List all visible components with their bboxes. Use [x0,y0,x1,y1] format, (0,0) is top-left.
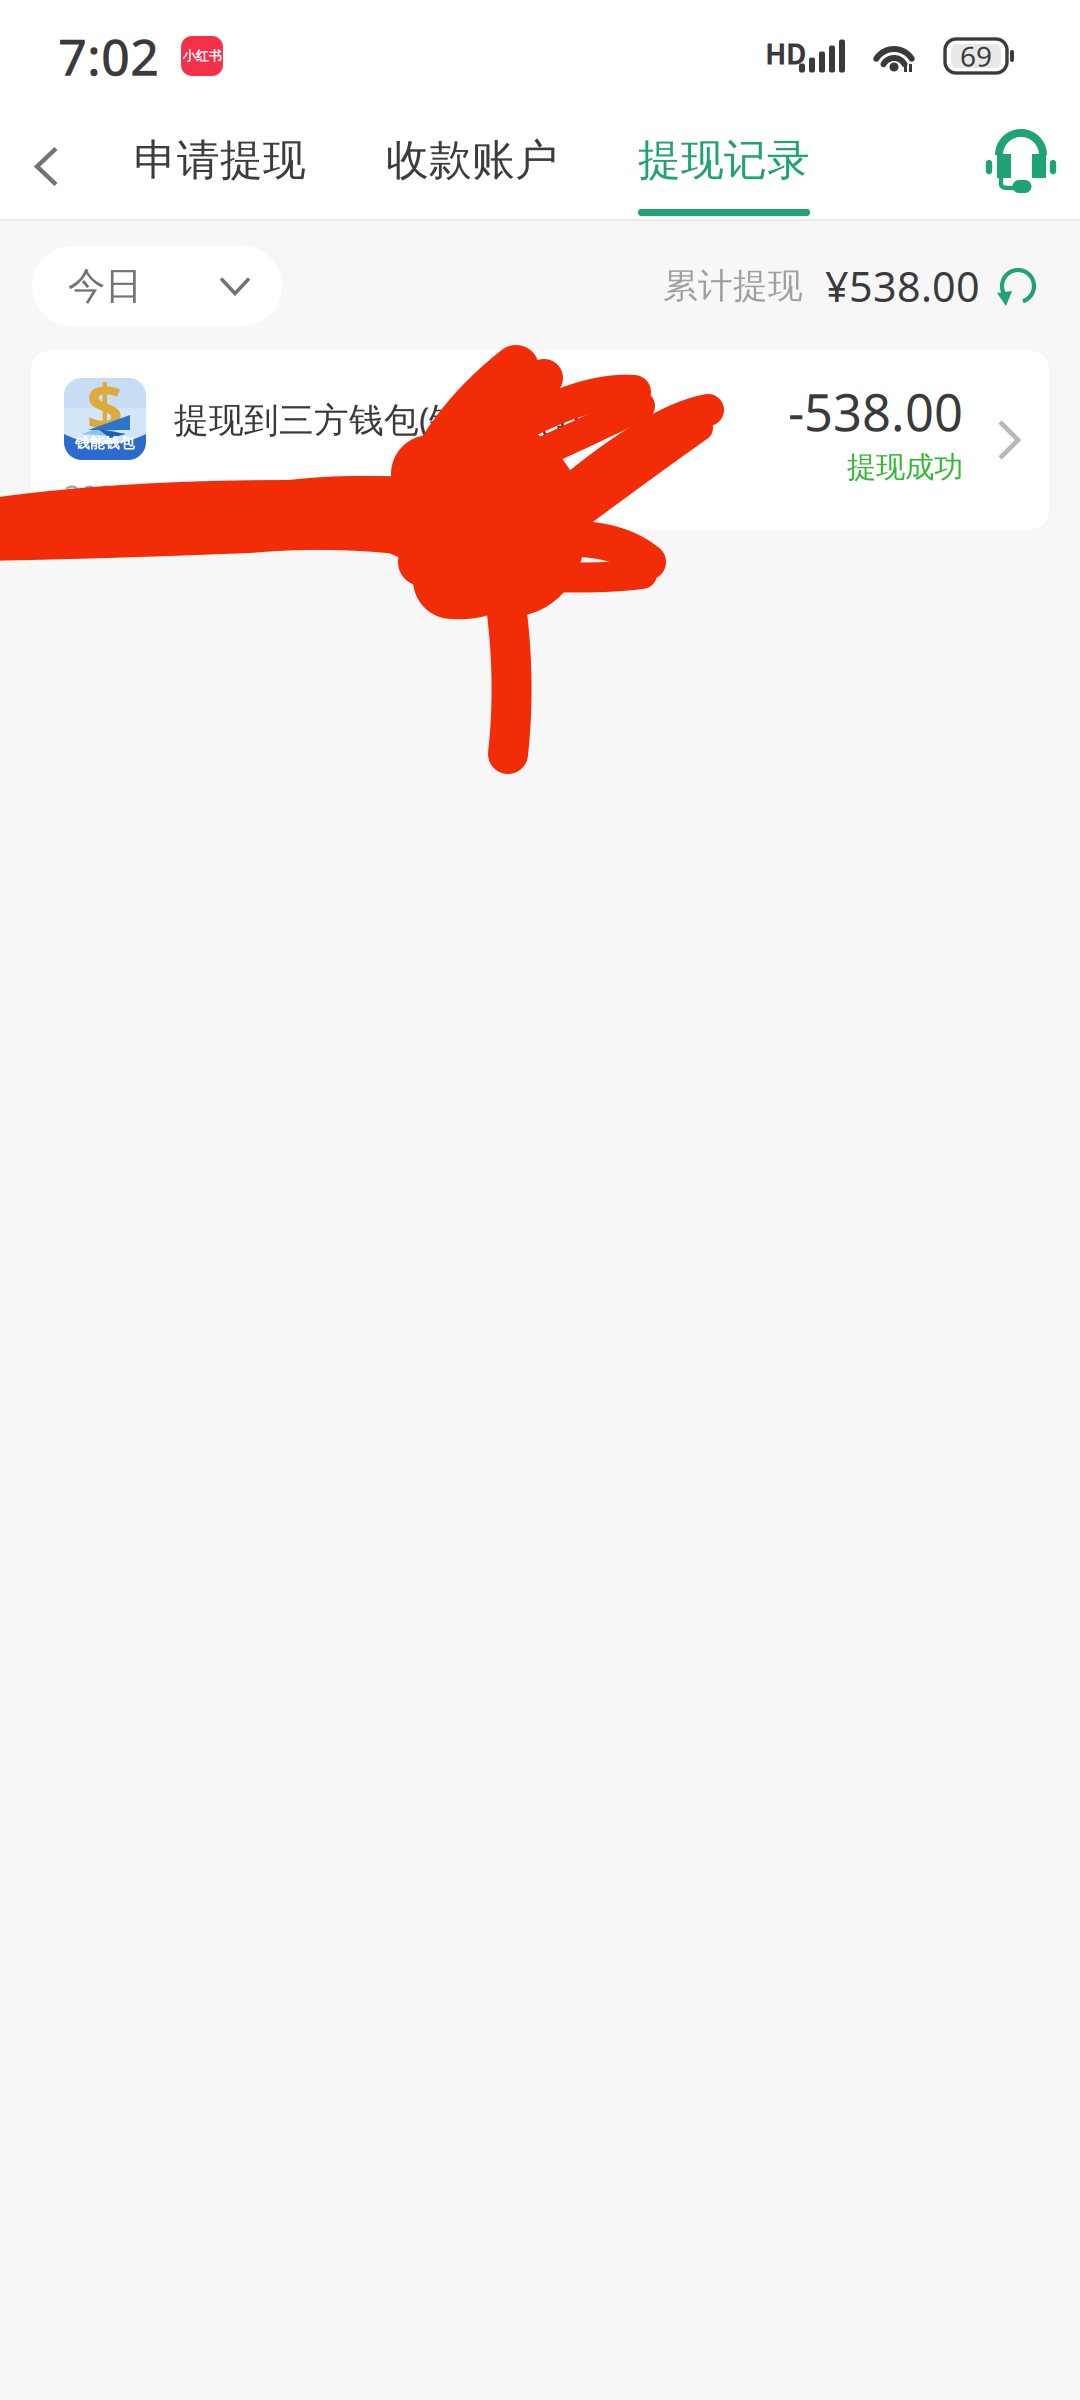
button[interactable]: 提现记录 [638,112,810,221]
staticText: 7:02 [58,22,159,90]
button[interactable]: Back [0,112,92,221]
button[interactable]: $ [31,351,1049,529]
staticText: 提现成功 [847,449,963,485]
staticText: $ [86,363,123,448]
button[interactable]: Customer service [962,112,1080,221]
staticText: 2025/09/08 19:22:10 [64,475,348,514]
button[interactable]: 收款账户 [386,112,558,221]
staticText: 提现记录 [638,134,810,186]
button[interactable]: 申请提现 [134,112,306,221]
button[interactable]: Refresh [994,262,1042,310]
staticText: 累计提现 [663,265,803,307]
button[interactable]: 今日 [32,246,282,326]
staticText: 小红书 [182,48,221,64]
staticText: 收款账户 [386,134,558,186]
staticText: 今日 [68,263,142,309]
staticText: ¥538.00 [825,259,980,313]
staticText: HD [765,35,806,72]
staticText: 钱能钱包 [75,434,135,452]
staticText: 69 [960,37,992,75]
staticText: 申请提现 [134,134,306,186]
staticText: 提现到三方钱包(钱能钱包) [174,396,579,442]
staticText: -538.00 [788,378,963,445]
